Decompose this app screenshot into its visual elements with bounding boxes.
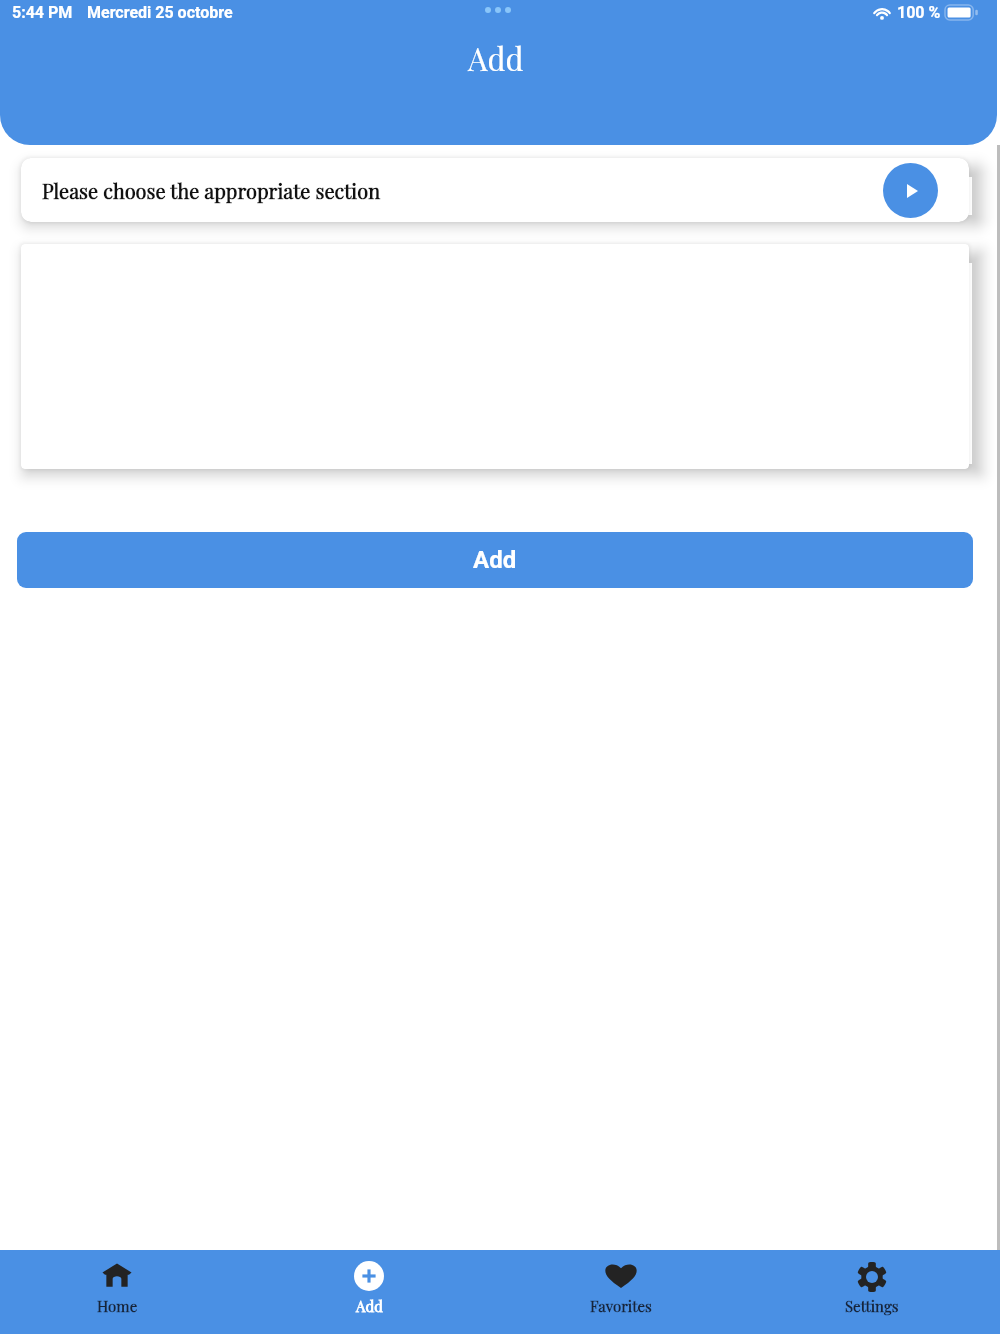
button[interactable]: Add [17, 532, 973, 588]
button[interactable]: Favorites [558, 1250, 684, 1334]
staticText: Add [356, 1296, 383, 1316]
button[interactable]: Settings [809, 1250, 935, 1334]
staticText: Settings [845, 1296, 899, 1316]
staticText: Favorites [590, 1296, 652, 1316]
staticText: Add [468, 37, 524, 78]
staticText: Mercredi 25 octobre [87, 3, 233, 22]
button[interactable]: Home [54, 1250, 180, 1334]
staticText: 5:44 PM [12, 3, 73, 22]
staticText: 100 % [897, 3, 941, 22]
button[interactable]: Add [306, 1250, 432, 1334]
staticText: Please choose the appropriate section [42, 177, 381, 204]
button[interactable]: Open section list [883, 163, 938, 218]
staticText: Home [97, 1296, 138, 1316]
staticText: Add [473, 546, 517, 574]
button[interactable]: Please choose the appropriate section [21, 158, 969, 222]
